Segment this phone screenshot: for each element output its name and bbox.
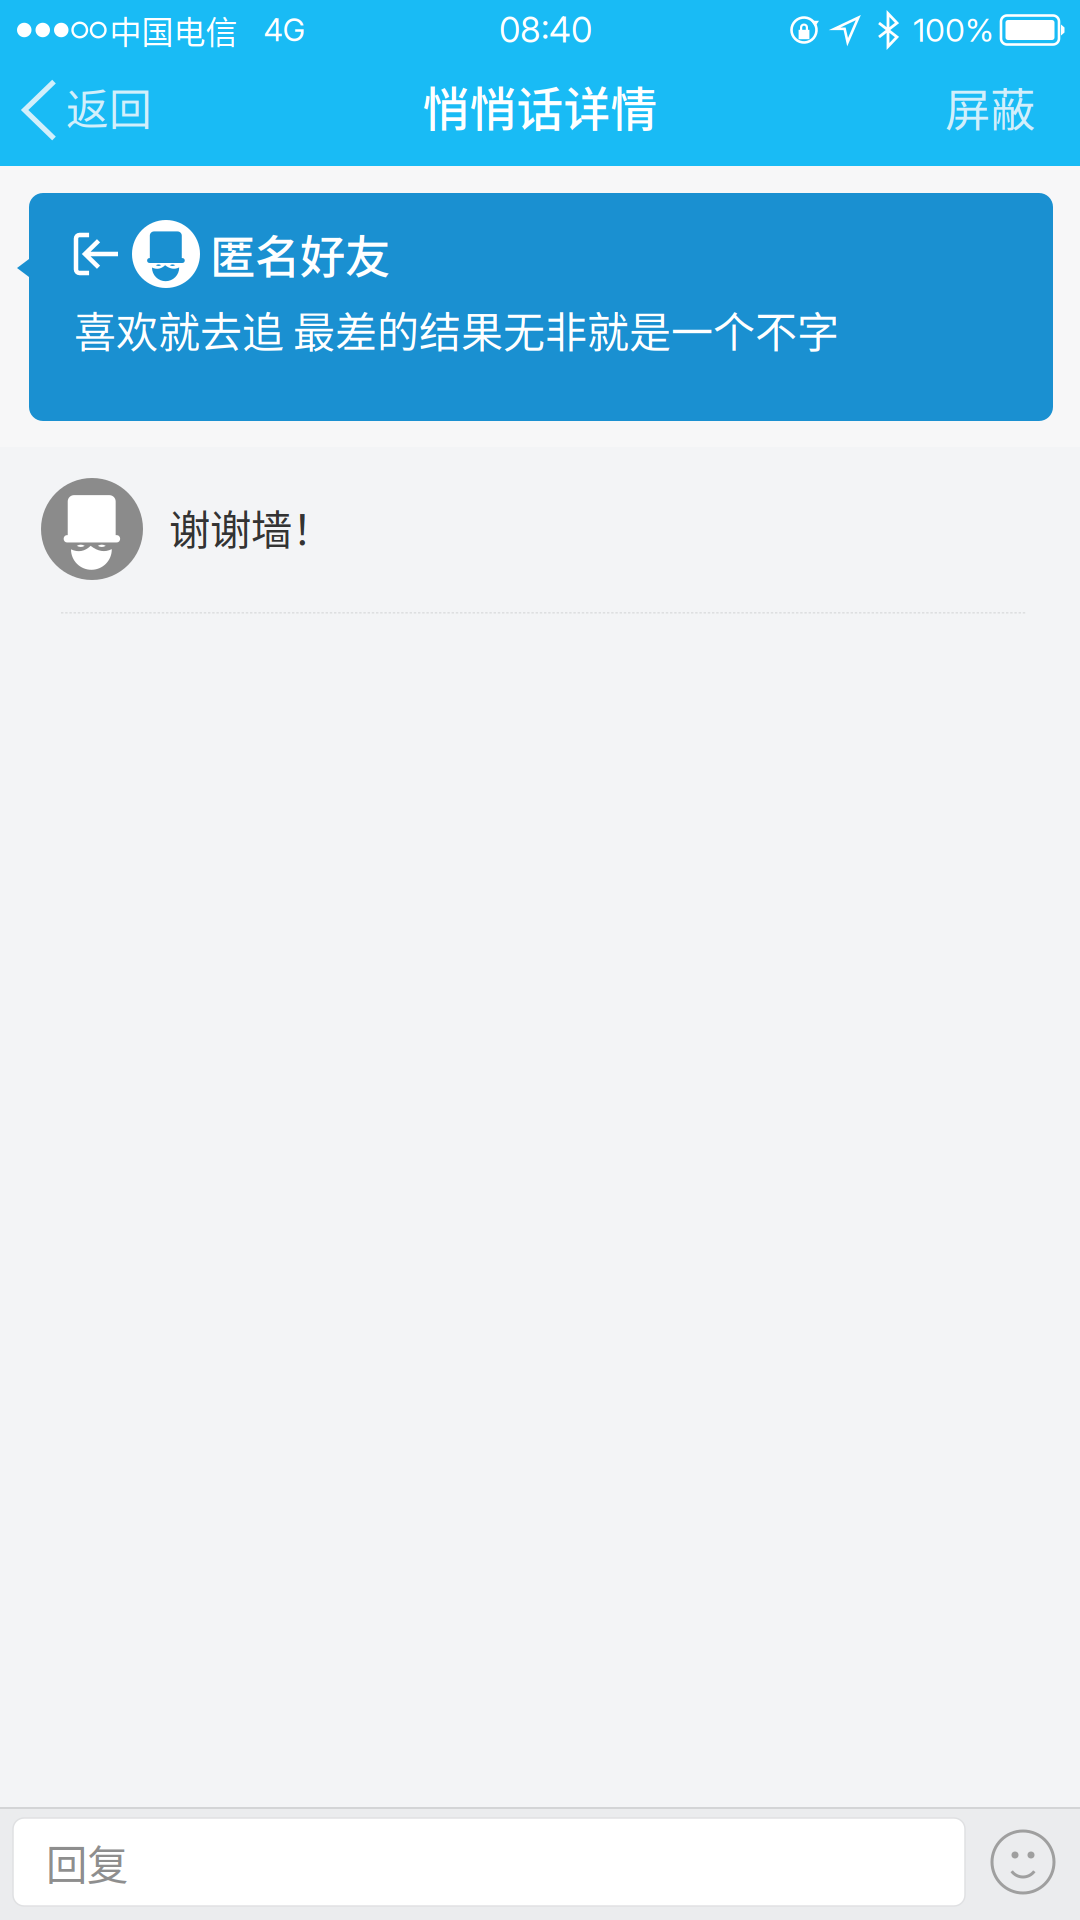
staticText: 喜欢就去追 最差的结果无非就是一个不字 — [74, 299, 839, 360]
staticText: 返回 — [66, 76, 152, 138]
button[interactable]: Emoji — [992, 1809, 1080, 1893]
staticText: 08:40 — [499, 9, 592, 51]
button[interactable]: 返回 — [0, 60, 172, 166]
button[interactable]: 谢谢墙！ — [0, 478, 1080, 580]
staticText: 回复 — [46, 1832, 128, 1892]
button[interactable]: 屏蔽 — [923, 60, 1057, 166]
staticText: 屏蔽 — [945, 74, 1035, 140]
button[interactable]: 匿名好友 — [17, 193, 1053, 421]
button[interactable]: 回复 — [0, 1809, 965, 1906]
staticText: 匿名好友 — [210, 221, 390, 287]
staticText: 中国电信 — [109, 7, 237, 53]
staticText: 悄悄话详情 — [422, 72, 657, 140]
staticText: 4G — [263, 11, 305, 48]
staticText: 100% — [913, 11, 994, 49]
staticText: 谢谢墙！ — [169, 497, 333, 557]
